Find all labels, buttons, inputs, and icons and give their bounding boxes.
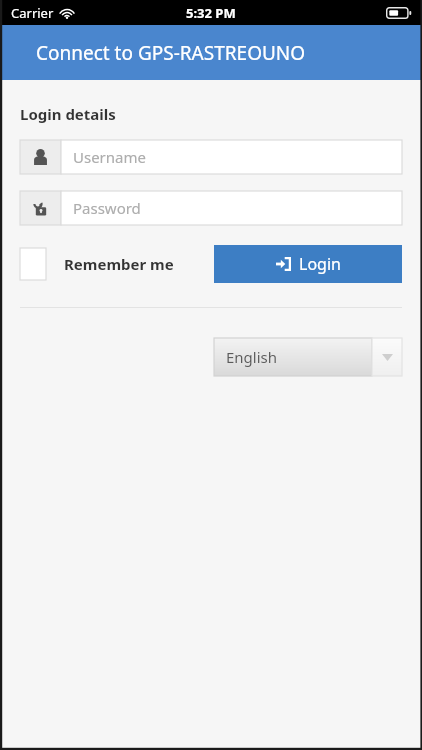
- staticText: English: [226, 347, 278, 367]
- other: Open language list: [372, 338, 402, 376]
- staticText: Connect to GPS-RASTREOUNO: [36, 40, 306, 66]
- staticText: 5:32 PM: [186, 4, 236, 22]
- staticText: Login: [299, 253, 341, 275]
- staticText: Password: [73, 198, 141, 218]
- staticText: Username: [73, 147, 146, 167]
- button[interactable]: Remember me: [64, 254, 174, 274]
- button[interactable]: Remember me checkbox: [20, 248, 46, 280]
- button[interactable]: Username: [20, 140, 402, 174]
- button[interactable]: Password: [20, 191, 402, 225]
- staticText: Carrier: [11, 4, 54, 22]
- staticText: Login details: [20, 104, 116, 124]
- button[interactable]: English: [214, 338, 402, 376]
- button[interactable]: Login: [214, 245, 402, 283]
- staticText: Remember me: [64, 254, 174, 274]
